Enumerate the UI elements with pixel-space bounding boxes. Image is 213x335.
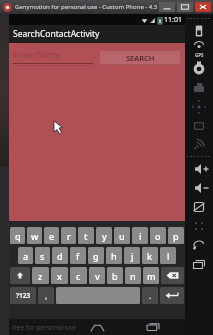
staticText: r bbox=[67, 230, 71, 242]
staticText: q bbox=[15, 230, 21, 242]
button[interactable]: Close bbox=[195, 2, 211, 12]
button[interactable]: Enter Name bbox=[13, 49, 93, 66]
button[interactable]: l bbox=[160, 247, 176, 264]
button[interactable]: Volume up bbox=[185, 159, 213, 178]
staticText: SearchContactActivity bbox=[13, 28, 100, 40]
button[interactable]: Back bbox=[185, 235, 213, 254]
staticText: l bbox=[167, 250, 170, 262]
button[interactable]: . bbox=[142, 287, 158, 304]
button[interactable]: Network bbox=[185, 135, 213, 154]
staticText: s bbox=[40, 250, 45, 262]
button[interactable]: Screen record bbox=[185, 78, 213, 97]
staticText: , bbox=[45, 290, 48, 301]
staticText: ?123 bbox=[16, 291, 31, 300]
staticText: h bbox=[111, 250, 117, 262]
button[interactable]: Maximize bbox=[177, 2, 193, 12]
staticText: 11:01 bbox=[164, 15, 182, 25]
staticText: free for personal use bbox=[12, 323, 76, 332]
button[interactable]: v bbox=[89, 267, 105, 284]
staticText: k bbox=[147, 250, 153, 262]
button[interactable]: GPS bbox=[185, 40, 213, 59]
button[interactable]: Home bbox=[86, 319, 108, 335]
staticText: j bbox=[131, 250, 134, 262]
button[interactable]: ?123 bbox=[10, 287, 36, 304]
staticText: e bbox=[49, 230, 55, 242]
staticText: p bbox=[173, 230, 179, 242]
button[interactable]: y bbox=[96, 227, 112, 244]
button[interactable]: , bbox=[38, 287, 54, 304]
staticText: v bbox=[95, 270, 100, 282]
button[interactable]: Shift bbox=[10, 267, 30, 284]
button[interactable]: Volume down bbox=[185, 178, 213, 197]
button[interactable]: Identifiers bbox=[185, 116, 213, 135]
button[interactable]: Backspace bbox=[161, 267, 184, 284]
button[interactable]: f bbox=[70, 247, 86, 264]
button[interactable]: c bbox=[70, 267, 87, 284]
button[interactable]: d bbox=[52, 247, 68, 264]
staticText: c bbox=[76, 270, 81, 282]
staticText: SEARCH bbox=[126, 53, 155, 63]
staticText: o bbox=[155, 230, 161, 242]
button[interactable]: Rotate bbox=[185, 197, 213, 216]
button[interactable]: Accelerometer bbox=[185, 97, 213, 116]
button[interactable]: Battery bbox=[185, 21, 213, 40]
staticText: x bbox=[57, 270, 62, 282]
button[interactable]: Recents bbox=[185, 254, 213, 273]
button[interactable]: Minimize bbox=[159, 2, 175, 12]
button[interactable]: SEARCH bbox=[99, 50, 181, 65]
button[interactable]: m bbox=[143, 267, 159, 284]
button[interactable]: u bbox=[114, 227, 130, 244]
staticText: u bbox=[119, 230, 125, 242]
button[interactable]: Enter bbox=[160, 287, 184, 304]
staticText: m bbox=[147, 270, 156, 282]
button[interactable]: n bbox=[125, 267, 141, 284]
button[interactable]: Keyboard bbox=[185, 216, 213, 235]
button[interactable]: s bbox=[35, 247, 50, 264]
button[interactable]: w bbox=[27, 227, 42, 244]
button[interactable]: e bbox=[44, 227, 59, 244]
button[interactable]: p bbox=[168, 227, 184, 244]
button[interactable]: b bbox=[107, 267, 123, 284]
staticText: Enter Name bbox=[13, 49, 61, 61]
button[interactable]: Camera bbox=[185, 59, 213, 78]
staticText: a bbox=[23, 250, 29, 262]
button[interactable]: i bbox=[132, 227, 148, 244]
button[interactable]: a bbox=[18, 247, 33, 264]
staticText: i bbox=[139, 230, 142, 242]
staticText: t bbox=[84, 230, 88, 242]
staticText: z bbox=[38, 270, 43, 282]
staticText: g bbox=[93, 250, 99, 262]
button[interactable]: z bbox=[32, 267, 49, 284]
staticText: GPS bbox=[195, 52, 204, 58]
button[interactable]: h bbox=[106, 247, 122, 264]
button[interactable]: r bbox=[61, 227, 76, 244]
button[interactable]: o bbox=[150, 227, 166, 244]
staticText: . bbox=[149, 290, 152, 301]
button[interactable]: q bbox=[10, 227, 25, 244]
staticText: y bbox=[102, 230, 107, 242]
button[interactable]: g bbox=[88, 247, 104, 264]
staticText: d bbox=[57, 250, 63, 262]
button[interactable]: x bbox=[51, 267, 68, 284]
staticText: n bbox=[130, 270, 136, 282]
staticText: f bbox=[76, 250, 80, 262]
staticText: Genymotion for personal use - Custom Pho… bbox=[15, 3, 171, 11]
button[interactable]: j bbox=[124, 247, 140, 264]
staticText: b bbox=[112, 270, 118, 282]
staticText: w bbox=[31, 230, 39, 242]
button[interactable]: k bbox=[142, 247, 158, 264]
button[interactable]: Recents bbox=[143, 319, 163, 335]
button[interactable]: t bbox=[78, 227, 94, 244]
